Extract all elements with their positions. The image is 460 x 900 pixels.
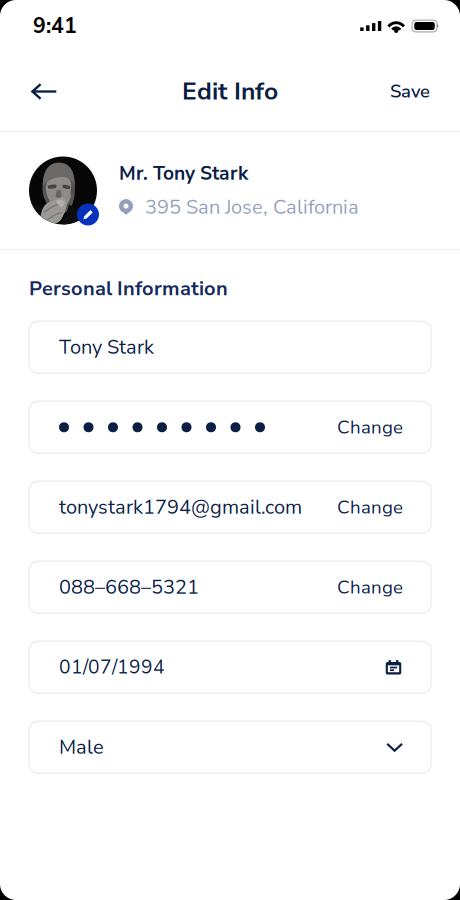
staticText: 9:41 — [33, 11, 77, 41]
staticText: Change — [337, 574, 403, 600]
staticText: Save — [390, 79, 430, 104]
button[interactable]: Back — [19, 69, 69, 114]
staticText: 395 San Jose, California — [145, 193, 359, 221]
staticText: Change — [337, 494, 403, 520]
staticText: Personal Information — [29, 275, 228, 302]
staticText: Change — [337, 414, 403, 440]
staticText: 01/07/1994 — [59, 654, 165, 680]
staticText: Male — [59, 734, 104, 761]
button[interactable]: 01/07/1994 — [29, 641, 431, 693]
button[interactable]: Change — [29, 401, 431, 453]
staticText: Tony Stark — [59, 334, 154, 361]
staticText: Edit Info — [182, 75, 278, 108]
staticText: Mr. Tony Stark — [119, 160, 248, 186]
button[interactable]: tonystark1794@gmail.com — [29, 481, 431, 533]
staticText: tonystark1794@gmail.com — [59, 494, 302, 521]
button[interactable]: Male — [29, 721, 431, 773]
staticText: 088–668–5321 — [59, 574, 199, 601]
button[interactable]: Save — [380, 65, 440, 118]
button[interactable]: 088–668–5321 — [29, 561, 431, 613]
